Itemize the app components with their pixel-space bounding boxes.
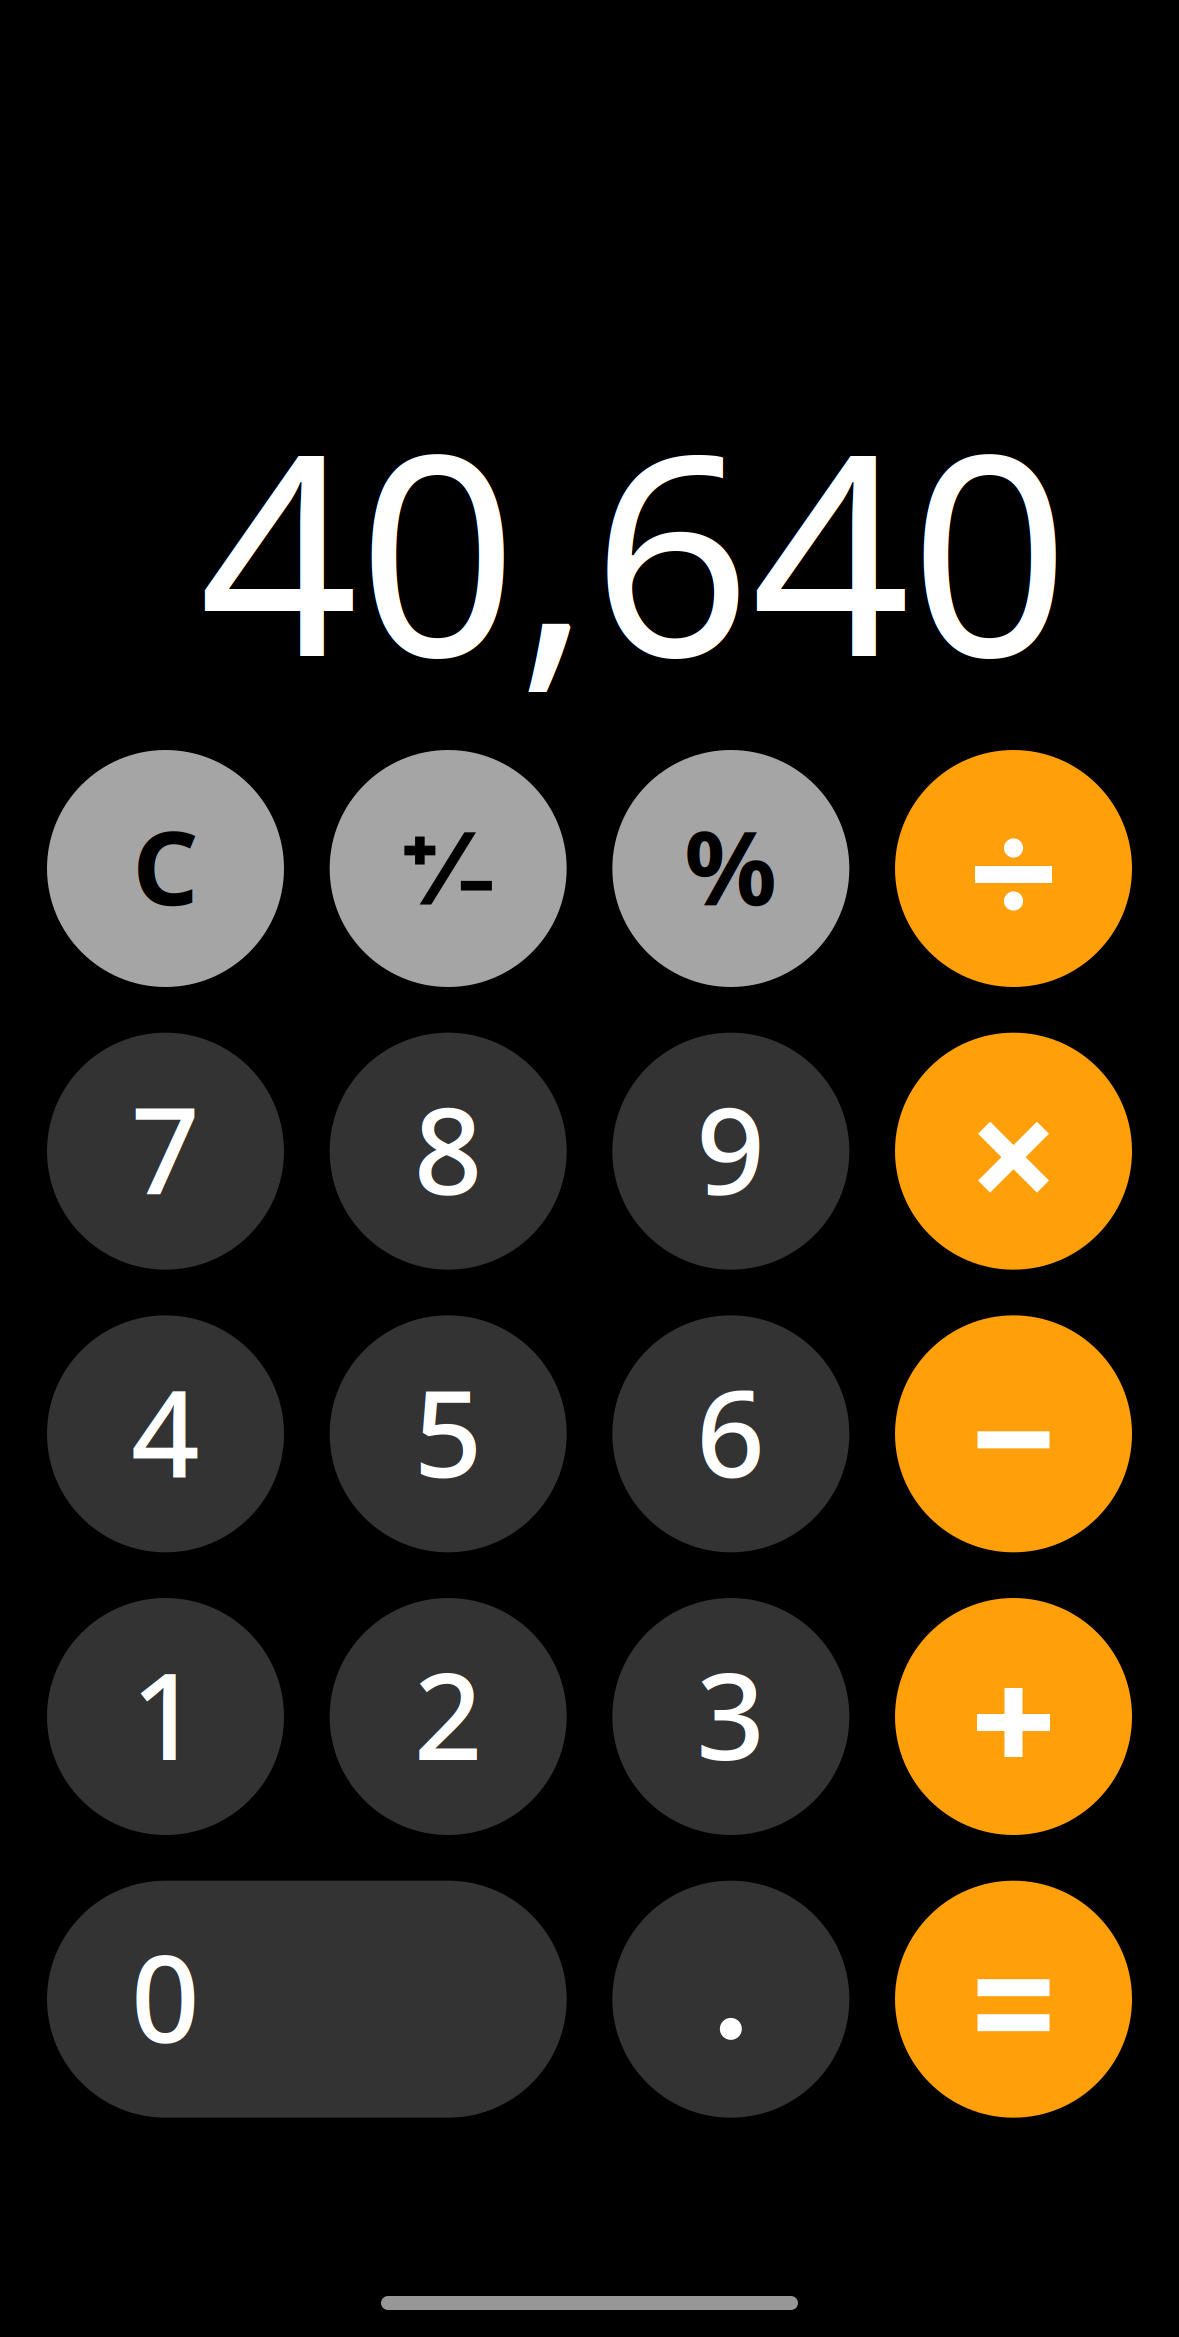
- button[interactable]: 9: [612, 1033, 849, 1270]
- staticText: 4: [131, 1351, 200, 1511]
- button[interactable]: Multiply: [895, 1033, 1132, 1270]
- button[interactable]: 1: [47, 1598, 284, 1835]
- button[interactable]: 2: [330, 1598, 567, 1835]
- button[interactable]: 4: [47, 1315, 284, 1552]
- button[interactable]: 3: [612, 1598, 849, 1835]
- button[interactable]: Toggle sign: [330, 750, 567, 987]
- staticText: 2: [414, 1634, 483, 1793]
- button[interactable]: 6: [612, 1315, 849, 1552]
- button[interactable]: Equals: [895, 1881, 1132, 2118]
- button[interactable]: Plus: [895, 1598, 1132, 1835]
- staticText: %: [684, 797, 777, 934]
- staticText: 3: [696, 1634, 765, 1793]
- button[interactable]: Minus: [895, 1315, 1132, 1552]
- button[interactable]: %: [612, 750, 849, 987]
- staticText: 40,640: [199, 363, 1069, 733]
- staticText: 5: [414, 1351, 483, 1511]
- staticText: 9: [696, 1068, 765, 1228]
- button[interactable]: 8: [330, 1033, 567, 1270]
- staticText: 1: [131, 1634, 200, 1793]
- button[interactable]: Decimal point: [612, 1881, 849, 2118]
- staticText: 8: [414, 1068, 483, 1228]
- button[interactable]: C: [47, 750, 284, 987]
- button[interactable]: Divide: [895, 750, 1132, 987]
- staticText: 6: [696, 1351, 765, 1511]
- staticText: C: [132, 797, 198, 934]
- staticText: 0: [131, 1916, 200, 2076]
- staticText: 7: [131, 1068, 200, 1228]
- button[interactable]: 5: [330, 1315, 567, 1552]
- button[interactable]: 0: [47, 1881, 567, 2118]
- button[interactable]: 7: [47, 1033, 284, 1270]
